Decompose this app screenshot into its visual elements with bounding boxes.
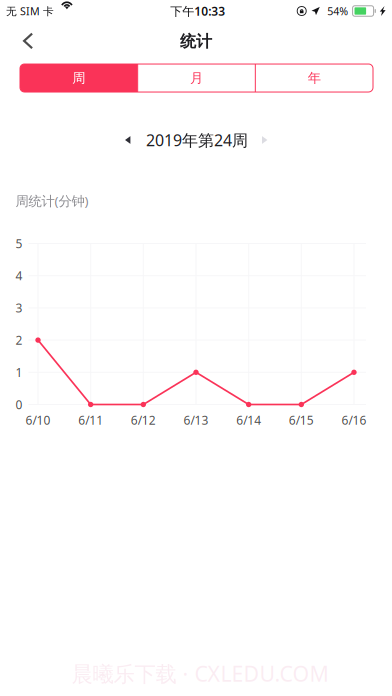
staticText: 2019年第24周	[146, 129, 248, 151]
staticText: 6/12	[131, 412, 156, 428]
staticText: 6/15	[289, 412, 314, 428]
staticText: 54%	[327, 4, 348, 18]
staticText: 下午10:33	[170, 3, 225, 19]
staticText: 统计	[180, 31, 212, 51]
staticText: 晨曦乐下载 · CXLEDU.COM	[71, 659, 328, 688]
staticText: 4	[15, 268, 22, 284]
staticText: 6/14	[236, 412, 261, 428]
staticText: 5	[15, 235, 22, 251]
staticText: 3	[15, 300, 22, 316]
button[interactable]: 年	[255, 64, 373, 92]
staticText: 6/10	[25, 412, 50, 428]
staticText: 1	[15, 364, 22, 380]
staticText: 0	[15, 396, 22, 412]
staticText: 6/11	[78, 412, 103, 428]
staticText: 无 SIM 卡	[6, 4, 54, 18]
button[interactable]: Previous week	[111, 125, 145, 155]
button[interactable]: Back	[6, 21, 50, 61]
staticText: 周统计(分钟)	[15, 192, 88, 210]
button[interactable]: 周	[20, 64, 138, 92]
staticText: 6/13	[183, 412, 208, 428]
staticText: 月	[190, 70, 203, 86]
staticText: 年	[308, 70, 321, 86]
button[interactable]: 月	[138, 64, 255, 92]
button[interactable]: Next week	[248, 125, 282, 155]
staticText: 2	[15, 332, 22, 348]
staticText: 周	[72, 70, 85, 86]
staticText: 6/16	[341, 412, 366, 428]
